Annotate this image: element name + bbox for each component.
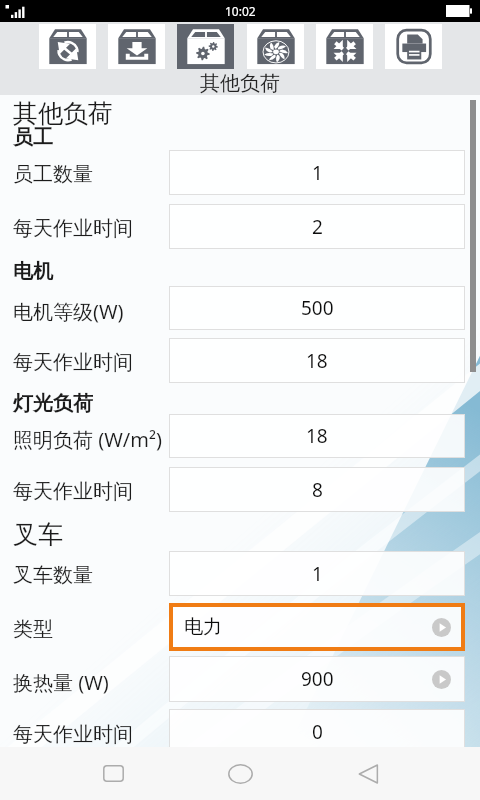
- staticText: 900: [301, 666, 334, 692]
- button[interactable]: Other loads: [177, 24, 234, 69]
- staticText: 18: [306, 348, 328, 374]
- staticText: 每天作业时间: [13, 350, 133, 375]
- staticText: 灯光负荷: [13, 391, 93, 416]
- button[interactable]: Print: [385, 24, 442, 69]
- button[interactable]: 18: [169, 414, 465, 458]
- button[interactable]: Recent apps: [83, 747, 143, 800]
- button[interactable]: 1: [169, 150, 465, 195]
- staticText: 1: [312, 561, 323, 587]
- button[interactable]: 18: [169, 338, 465, 383]
- button[interactable]: 8: [169, 467, 465, 512]
- button[interactable]: 500: [169, 286, 465, 330]
- staticText: 叉车: [13, 519, 63, 550]
- staticText: 电机等级(W): [13, 298, 124, 325]
- staticText: 每天作业时间: [13, 722, 133, 747]
- staticText: 8: [312, 477, 323, 503]
- staticText: 照明负荷 (W/m²): [13, 426, 162, 453]
- staticText: 0: [312, 719, 323, 745]
- button[interactable]: 电力: [169, 603, 465, 651]
- staticText: 18: [306, 423, 328, 449]
- staticText: 叉车数量: [13, 563, 93, 588]
- staticText: 员工数量: [13, 162, 93, 187]
- staticText: 10:02: [225, 3, 256, 19]
- button[interactable]: Back: [339, 747, 399, 800]
- button[interactable]: Fan load: [247, 24, 304, 69]
- staticText: 1: [312, 160, 323, 186]
- button[interactable]: 2: [169, 204, 465, 249]
- staticText: 换热量 (W): [13, 669, 109, 696]
- staticText: 其他负荷: [13, 98, 113, 129]
- button[interactable]: 0: [169, 709, 465, 755]
- staticText: 员工: [13, 125, 53, 150]
- button[interactable]: Inbound load: [108, 24, 165, 69]
- staticText: 类型: [13, 617, 53, 642]
- button[interactable]: 1: [169, 551, 465, 596]
- button[interactable]: 900: [169, 656, 465, 702]
- staticText: 每天作业时间: [13, 479, 133, 504]
- staticText: 其他负荷: [200, 71, 280, 96]
- staticText: 500: [301, 295, 334, 321]
- button[interactable]: Home: [210, 747, 270, 800]
- staticText: 电力: [184, 615, 222, 639]
- button[interactable]: Cold storage sync: [39, 24, 96, 69]
- staticText: 2: [312, 214, 323, 240]
- staticText: 每天作业时间: [13, 216, 133, 241]
- button[interactable]: Infiltration load: [316, 24, 373, 69]
- staticText: 电机: [13, 259, 53, 284]
